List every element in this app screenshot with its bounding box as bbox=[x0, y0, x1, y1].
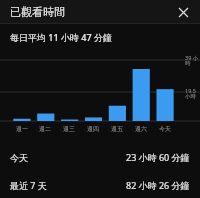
staticText: 週六 bbox=[135, 125, 147, 133]
button[interactable]: Close bbox=[174, 3, 192, 21]
staticText: 39 小 時 bbox=[185, 54, 199, 67]
staticText: 19.5 小時 bbox=[185, 87, 196, 100]
button[interactable]: 最近 7 天 bbox=[0, 171, 200, 198]
staticText: 23 小時 60 分鐘 bbox=[126, 151, 190, 163]
staticText: 週一 bbox=[16, 125, 28, 133]
staticText: 今天 bbox=[159, 125, 171, 133]
staticText: 今天 bbox=[10, 152, 28, 163]
staticText: 82 小時 26 分鐘 bbox=[126, 179, 190, 191]
staticText: 最近 7 天 bbox=[10, 179, 47, 191]
staticText: 週四 bbox=[87, 125, 99, 133]
staticText: 週三 bbox=[63, 125, 75, 133]
button[interactable]: 今天 bbox=[0, 143, 200, 171]
staticText: 每日平均 11 小時 47 分鐘 bbox=[10, 31, 112, 43]
staticText: 週二 bbox=[39, 125, 51, 133]
staticText: 已觀看時間 bbox=[10, 5, 65, 19]
staticText: 週五 bbox=[111, 125, 123, 133]
